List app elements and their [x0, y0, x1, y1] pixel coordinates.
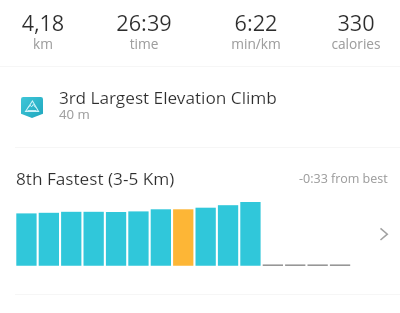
staticText: 8th Fastest (3-5 Km)	[16, 167, 175, 190]
button[interactable]: Show details	[372, 220, 400, 248]
button[interactable]: 6:22	[206, 8, 306, 50]
staticText: min/km	[206, 34, 306, 53]
button[interactable]: 4,18	[0, 8, 93, 50]
staticText: calories	[306, 34, 400, 53]
staticText: 330	[306, 8, 400, 38]
staticText: 26:39	[94, 8, 194, 38]
button[interactable]: 26:39	[94, 8, 194, 50]
staticText: time	[94, 34, 194, 53]
staticText: 4,18	[0, 8, 93, 38]
button[interactable]: 330	[306, 8, 400, 50]
staticText: km	[0, 34, 93, 53]
staticText: 40 m	[59, 105, 90, 123]
staticText: 6:22	[206, 8, 306, 38]
staticText: -0:33 from best	[299, 170, 388, 187]
button[interactable]	[0, 196, 400, 276]
button[interactable]: 3rd Largest Elevation Climb	[0, 67, 400, 147]
staticText: 3rd Largest Elevation Climb	[59, 86, 277, 109]
